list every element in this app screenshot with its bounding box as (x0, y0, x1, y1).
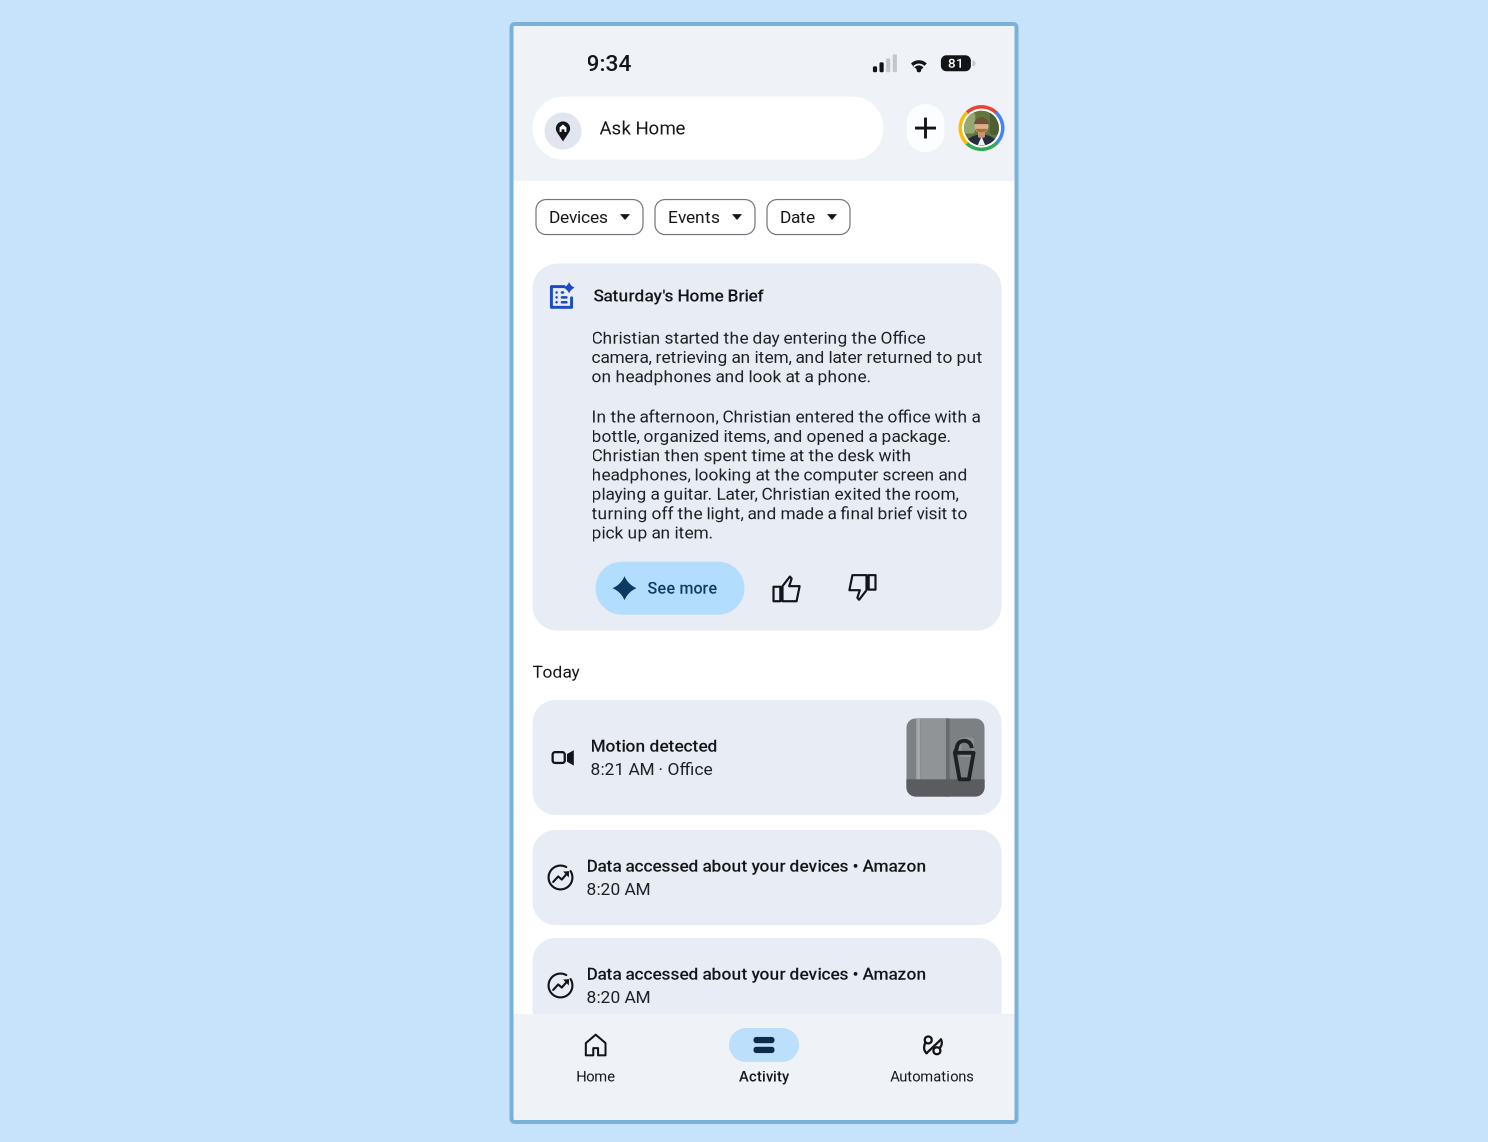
button[interactable]: See more (595, 562, 744, 615)
button[interactable]: Events (655, 200, 755, 235)
staticText: Date (780, 207, 815, 227)
staticText: Today (532, 662, 579, 682)
staticText: Home (576, 1068, 615, 1085)
staticText: Data accessed about your devices • Amazo… (586, 964, 926, 984)
button[interactable]: Data accessed about your devices • Amazo… (532, 830, 1001, 925)
button[interactable]: Activity (680, 1028, 848, 1085)
staticText: Events (668, 207, 720, 227)
button[interactable]: Automations (848, 1028, 1016, 1085)
staticText: Christian started the day entering the O… (591, 328, 982, 386)
staticText: 8:20 AM (586, 987, 650, 1007)
staticText: Automations (890, 1068, 974, 1085)
button[interactable]: Account (958, 105, 1004, 151)
staticText: Activity (739, 1068, 789, 1085)
staticText: 8:21 AM · Office (590, 759, 712, 779)
staticText: Devices (549, 207, 608, 227)
staticText: 8:20 AM (586, 879, 650, 899)
button[interactable]: Home (511, 1028, 680, 1085)
staticText: In the afternoon, Christian entered the … (591, 406, 980, 543)
button[interactable]: Good brief (765, 562, 808, 615)
staticText: Saturday's Home Brief (593, 285, 763, 306)
staticText: 81 (948, 55, 964, 71)
button[interactable]: Date (767, 200, 850, 235)
staticText: See more (647, 579, 717, 598)
button[interactable]: Add device (906, 104, 944, 152)
button[interactable]: Data accessed about your devices • Amazo… (532, 938, 1001, 1033)
button[interactable]: Devices (536, 200, 643, 235)
staticText: Motion detected (590, 736, 717, 756)
button[interactable]: Ask Home (532, 97, 883, 160)
staticText: Data accessed about your devices • Amazo… (586, 856, 926, 876)
button[interactable]: Motion detected (532, 700, 1001, 815)
staticText: Ask Home (599, 117, 685, 139)
button[interactable]: Bad brief (840, 562, 883, 615)
staticText: 9:34 (586, 50, 631, 77)
